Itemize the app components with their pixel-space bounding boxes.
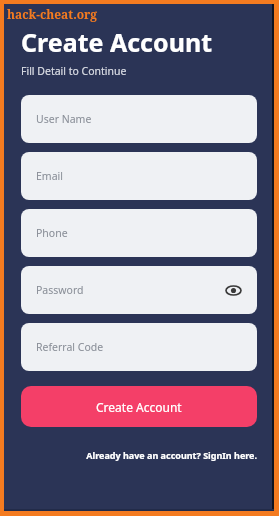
staticText: Password: [36, 283, 84, 297]
staticText: Email: [36, 169, 63, 183]
staticText: Create Account: [96, 399, 182, 415]
staticText: Already have an account? SignIn here.: [86, 449, 257, 461]
staticText: Referral Code: [36, 340, 104, 354]
button[interactable]: Phone: [21, 209, 257, 257]
staticText: hack-cheat.org: [7, 6, 98, 22]
button[interactable]: Referral Code: [21, 323, 257, 371]
button[interactable]: Email: [21, 152, 257, 200]
staticText: User Name: [36, 112, 92, 126]
button[interactable]: Show password: [224, 281, 242, 299]
staticText: Phone: [36, 226, 68, 240]
staticText: Fill Detail to Continue: [21, 64, 127, 78]
button[interactable]: Already have an account? SignIn here.: [21, 449, 257, 461]
button[interactable]: User Name: [21, 95, 257, 143]
staticText: Create Account: [21, 25, 212, 59]
button[interactable]: Create Account: [21, 386, 257, 427]
button[interactable]: Password: [21, 266, 257, 314]
